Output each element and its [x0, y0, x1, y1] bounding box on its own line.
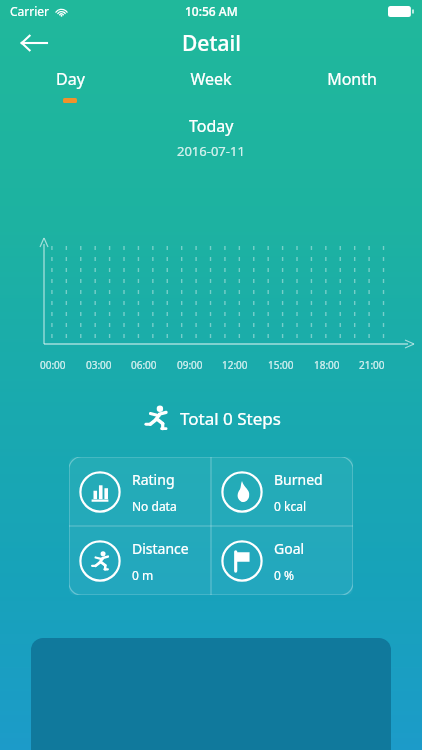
staticText: Day: [56, 68, 85, 90]
button[interactable]: Goal: [211, 526, 353, 595]
staticText: Today: [189, 115, 234, 137]
staticText: Distance: [132, 539, 189, 558]
staticText: 0 m: [132, 567, 154, 583]
staticText: 06:00: [131, 358, 157, 372]
staticText: 12:00: [222, 358, 248, 372]
button[interactable]: Burned: [211, 457, 353, 526]
staticText: 10:56 AM: [185, 3, 238, 19]
staticText: Goal: [274, 539, 305, 558]
staticText: 00:00: [40, 358, 66, 372]
staticText: Detail: [182, 29, 241, 58]
staticText: 03:00: [86, 358, 112, 372]
staticText: 0 %: [274, 567, 294, 583]
button[interactable]: Month: [281, 68, 422, 103]
staticText: 0 kcal: [274, 498, 306, 514]
staticText: Rating: [132, 470, 175, 489]
staticText: 18:00: [314, 358, 340, 372]
button[interactable]: Back: [12, 21, 56, 65]
button[interactable]: Day: [0, 68, 140, 103]
staticText: 21:00: [359, 358, 385, 372]
staticText: Burned: [274, 470, 323, 489]
staticText: No data: [132, 498, 177, 514]
staticText: Carrier: [10, 3, 50, 19]
staticText: Week: [190, 68, 232, 90]
staticText: 09:00: [177, 358, 203, 372]
staticText: 2016-07-11: [177, 142, 245, 160]
staticText: Total 0 Steps: [180, 407, 281, 430]
staticText: 15:00: [268, 358, 294, 372]
staticText: Month: [327, 68, 377, 90]
button[interactable]: Distance: [69, 526, 211, 595]
button[interactable]: Week: [140, 68, 281, 103]
button[interactable]: Rating: [69, 457, 211, 526]
